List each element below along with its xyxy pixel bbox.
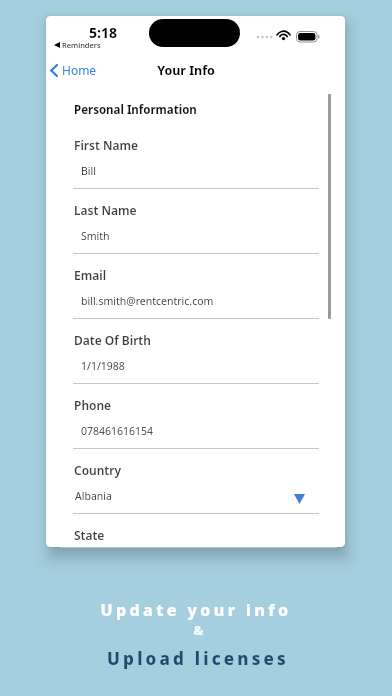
staticText: Smith: [81, 229, 110, 243]
staticText: Your Info: [157, 62, 215, 79]
staticText: &: [193, 621, 204, 639]
staticText: Date Of Birth: [74, 332, 151, 348]
staticText: Phone: [74, 397, 112, 413]
staticText: Reminders: [62, 40, 101, 50]
staticText: Update your info: [100, 599, 292, 621]
staticText: bill.smith@rentcentric.com: [81, 294, 214, 308]
staticText: Personal Information: [74, 102, 197, 118]
staticText: First Name: [74, 137, 139, 153]
staticText: Last Name: [74, 202, 137, 218]
staticText: Home: [62, 62, 97, 78]
staticText: Country: [74, 462, 122, 478]
staticText: 1/1/1988: [81, 359, 125, 373]
staticText: Email: [74, 267, 107, 283]
staticText: State: [74, 527, 105, 543]
staticText: Upload licenses: [107, 647, 289, 670]
staticText: 078461616154: [81, 424, 154, 438]
staticText: 5:18: [89, 23, 117, 42]
staticText: Bill: [81, 164, 96, 178]
staticText: Albania: [75, 489, 112, 503]
